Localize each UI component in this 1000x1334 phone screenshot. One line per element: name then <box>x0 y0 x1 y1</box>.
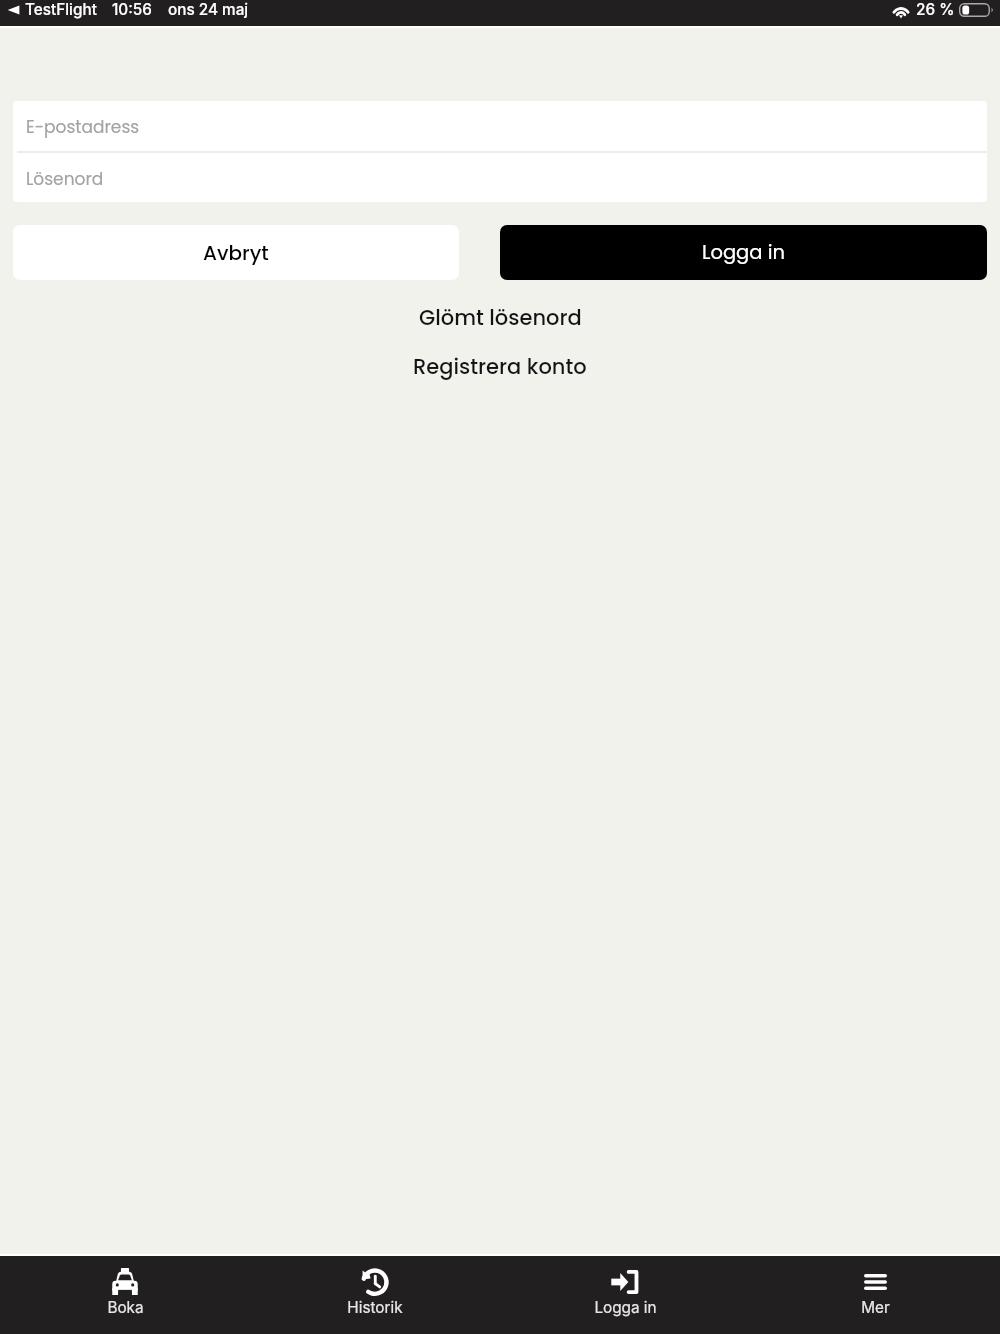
button[interactable]: Boka <box>0 1256 250 1334</box>
button[interactable]: Logga in <box>500 1256 750 1334</box>
staticText: Glömt lösenord <box>419 303 582 332</box>
staticText: Logga in <box>594 1298 657 1317</box>
other: Tillbaka <box>7 3 20 17</box>
other: Logga in <box>611 1270 639 1294</box>
staticText: Historik <box>347 1298 403 1317</box>
staticText: 10:56 <box>112 0 152 19</box>
button[interactable]: Avbryt <box>13 225 459 280</box>
button[interactable]: Mer <box>750 1256 1000 1334</box>
other: Wi-Fi <box>891 3 911 17</box>
button[interactable]: Registrera konto <box>0 349 1000 383</box>
staticText: E-postadress <box>26 115 140 139</box>
staticText: Lösenord <box>26 167 104 191</box>
staticText: Avbryt <box>203 239 269 267</box>
other: Mer <box>864 1274 887 1290</box>
button[interactable]: Historik <box>250 1256 500 1334</box>
other: Batteri <box>959 3 993 17</box>
staticText: Logga in <box>702 239 785 266</box>
button[interactable]: Logga in <box>500 225 987 280</box>
button[interactable]: Lösenord <box>13 153 987 202</box>
staticText: 26 % <box>916 0 955 19</box>
staticText: Mer <box>861 1298 890 1317</box>
staticText: Boka <box>107 1298 144 1317</box>
button[interactable]: E-postadress <box>13 101 987 151</box>
button[interactable]: Glömt lösenord <box>0 300 1000 334</box>
other: Historik <box>361 1268 390 1297</box>
staticText: TestFlight <box>25 0 97 19</box>
staticText: Registrera konto <box>413 352 587 381</box>
staticText: ons 24 maj <box>168 0 249 19</box>
other: Boka <box>111 1268 139 1295</box>
